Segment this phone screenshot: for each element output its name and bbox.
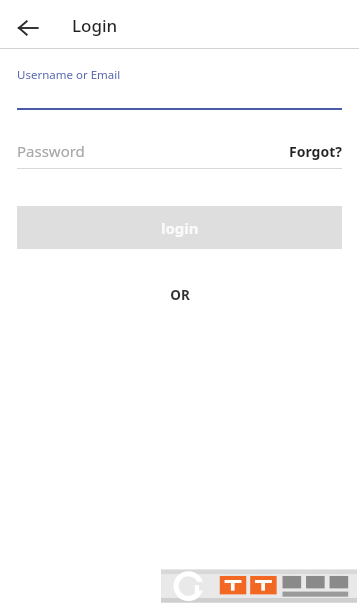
button[interactable]: Password <box>17 141 289 161</box>
staticText: Username or Email <box>17 67 121 83</box>
staticText: OR <box>170 286 190 304</box>
button[interactable]: Username or Email <box>17 67 342 110</box>
button[interactable]: Back <box>10 10 46 46</box>
staticText: Forgot? <box>289 142 342 161</box>
staticText: login <box>161 218 199 238</box>
button[interactable]: login <box>17 206 342 249</box>
staticText: Password <box>17 141 85 161</box>
staticText: Login <box>72 14 118 37</box>
button[interactable]: Forgot? <box>289 142 342 161</box>
